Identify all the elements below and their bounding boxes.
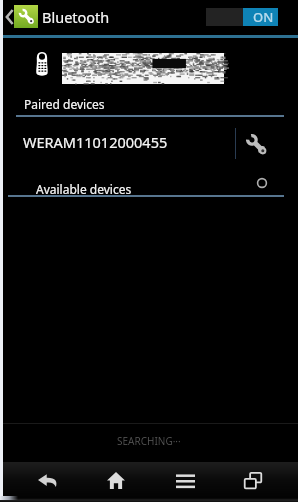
staticText: ON bbox=[253, 8, 274, 26]
staticText: Available devices bbox=[36, 181, 132, 197]
button[interactable]: Scanning bbox=[256, 177, 268, 189]
button[interactable]: Back bbox=[4, 2, 40, 33]
button[interactable]: Menu bbox=[162, 462, 208, 499]
button[interactable]: WERAM11012000455 bbox=[0, 118, 234, 166]
button[interactable]: Recent apps bbox=[230, 462, 276, 499]
button[interactable]: Device settings bbox=[236, 120, 276, 168]
button[interactable]: Bluetooth on bbox=[206, 8, 278, 26]
staticText: WERAM11012000455 bbox=[23, 132, 168, 152]
button[interactable] bbox=[0, 36, 298, 92]
staticText: SEARCHING··· bbox=[117, 434, 181, 448]
staticText: Paired devices bbox=[24, 96, 105, 112]
button[interactable]: Back bbox=[24, 462, 70, 499]
staticText: Bluetooth bbox=[42, 7, 110, 27]
button[interactable]: Home bbox=[93, 462, 139, 499]
